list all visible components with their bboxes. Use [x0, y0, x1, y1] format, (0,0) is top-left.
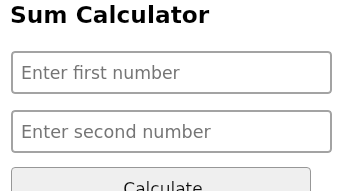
staticText: Enter second number — [21, 122, 211, 142]
button[interactable]: Enter second number — [11, 110, 332, 153]
staticText: Enter first number — [21, 63, 180, 83]
staticText: Sum Calculator — [10, 1, 210, 28]
button[interactable]: Enter first number — [11, 51, 332, 94]
button[interactable]: Calculate — [11, 167, 311, 191]
staticText: Calculate — [123, 179, 203, 191]
